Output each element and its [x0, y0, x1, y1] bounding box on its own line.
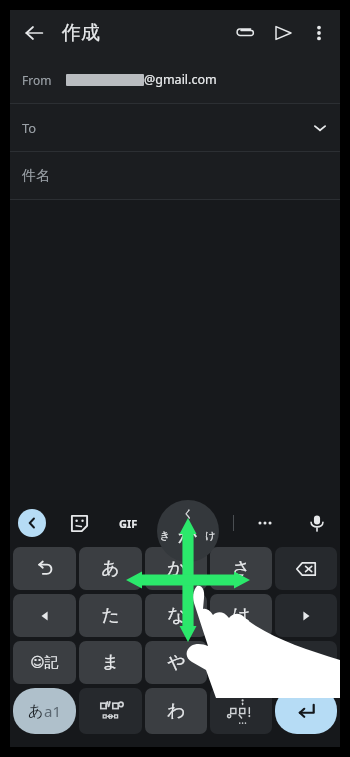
button[interactable]: Punctuation	[210, 688, 272, 734]
button[interactable]: Dakuten	[79, 688, 142, 734]
staticText: 作成	[62, 21, 100, 45]
button[interactable]: か	[145, 547, 207, 590]
staticText: く	[183, 507, 194, 520]
button[interactable]: Settings	[192, 508, 222, 538]
button[interactable]: ま	[79, 641, 142, 684]
button[interactable]: Back	[14, 13, 54, 53]
staticText: か	[178, 524, 198, 548]
button[interactable]: や	[145, 641, 207, 684]
staticText: わ	[167, 700, 186, 723]
staticText: か	[167, 557, 186, 580]
staticText: さ	[232, 557, 251, 580]
staticText: あ	[101, 557, 120, 580]
button[interactable]: Stickers	[64, 508, 94, 538]
staticText: @gmail.com	[144, 71, 217, 88]
button[interactable]: 件名	[10, 152, 340, 199]
staticText: a1	[44, 701, 61, 721]
button[interactable]: UNDO	[13, 547, 76, 590]
button[interactable]: Voice input	[302, 508, 332, 538]
button[interactable]: Send	[264, 14, 302, 52]
button[interactable]: Attach file	[226, 14, 264, 52]
staticText: ま	[101, 651, 120, 674]
button[interactable]: SPACE	[275, 641, 337, 684]
button[interactable]: な	[145, 594, 207, 637]
button[interactable]: To	[10, 104, 340, 151]
staticText: From	[22, 72, 52, 88]
button[interactable]: ☺記	[13, 641, 76, 684]
staticText: 件名	[22, 167, 50, 185]
staticText: は	[232, 604, 251, 627]
staticText: ☺記	[30, 654, 59, 672]
button[interactable]: さ	[210, 547, 272, 590]
button[interactable]: More options	[302, 16, 336, 50]
staticText: あ	[28, 702, 44, 721]
button[interactable]: Enter	[275, 688, 337, 734]
button[interactable]: From	[10, 56, 340, 103]
button[interactable]: は	[210, 594, 272, 637]
button[interactable]: ら	[210, 641, 272, 684]
button[interactable]: LEFT	[13, 594, 76, 637]
button[interactable]: BACKSPACE	[275, 547, 337, 590]
staticText: な	[167, 604, 186, 627]
staticText: き	[160, 529, 171, 542]
staticText: け	[205, 529, 216, 542]
button[interactable]: More	[250, 508, 280, 538]
button[interactable]: Back	[18, 509, 46, 537]
staticText: To	[22, 119, 37, 137]
staticText: や	[167, 651, 186, 674]
button[interactable]: RIGHT	[275, 594, 337, 637]
staticText: た	[101, 604, 120, 627]
button[interactable]: GIF	[111, 506, 145, 540]
button[interactable]: あ	[79, 547, 142, 590]
button[interactable]: わ	[145, 688, 207, 734]
staticText: GIF	[119, 516, 138, 531]
button[interactable]: あ	[13, 688, 76, 734]
button[interactable]: た	[79, 594, 142, 637]
